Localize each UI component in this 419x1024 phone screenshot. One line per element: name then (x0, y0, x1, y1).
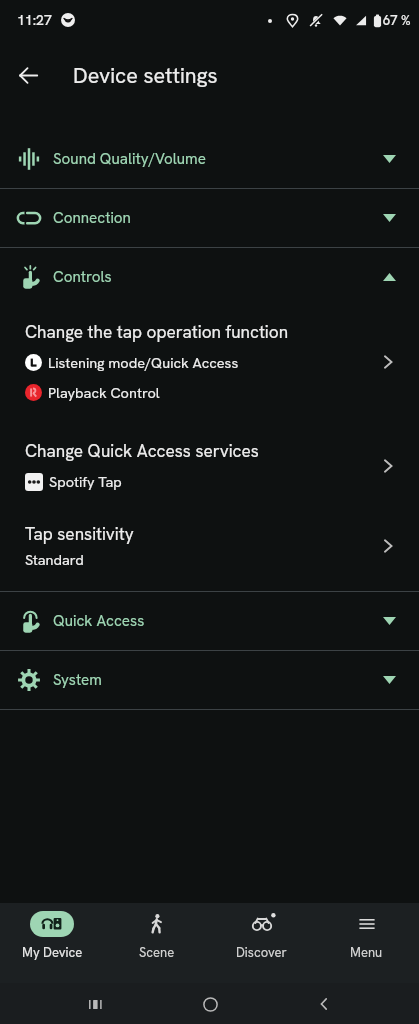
staticText: Controls (53, 267, 112, 287)
button[interactable]: Sound Quality/Volume (0, 130, 419, 188)
staticText: Change the tap operation function (25, 321, 289, 343)
staticText: My Device (22, 944, 83, 961)
staticText: Scene (139, 944, 175, 961)
staticText: Playback Control (48, 383, 160, 402)
button[interactable]: System (0, 651, 419, 709)
staticText: 11:27 (17, 11, 52, 29)
button[interactable]: Change Quick Access services (0, 410, 419, 499)
button[interactable]: Home (190, 984, 230, 1024)
staticText: Quick Access (53, 611, 145, 631)
staticText: Spotify Tap (49, 472, 122, 491)
staticText: Menu (350, 944, 383, 961)
button[interactable]: Connection (0, 189, 419, 247)
button[interactable]: Tap sensitivity (0, 499, 419, 591)
staticText: Sound Quality/Volume (53, 149, 206, 169)
button[interactable]: Quick Access (0, 592, 419, 650)
button[interactable]: Menu (314, 903, 419, 983)
button[interactable]: My Device (0, 903, 104, 983)
button[interactable]: Change the tap operation function (0, 306, 419, 410)
button[interactable]: Back (304, 984, 344, 1024)
button[interactable]: Controls (0, 248, 419, 306)
staticText: Connection (53, 208, 131, 228)
button[interactable]: Recents (75, 984, 115, 1024)
staticText: Device settings (73, 61, 218, 89)
button[interactable]: Scene (104, 903, 209, 983)
staticText: Change Quick Access services (25, 440, 259, 462)
staticText: Discover (236, 944, 287, 961)
staticText: Listening mode/Quick Access (48, 353, 239, 372)
staticText: Standard (25, 550, 84, 569)
staticText: 67 % (383, 12, 411, 29)
button[interactable]: Discover (209, 903, 314, 983)
button[interactable]: Back (6, 53, 50, 97)
staticText: Tap sensitivity (25, 523, 134, 545)
staticText: System (53, 670, 102, 690)
